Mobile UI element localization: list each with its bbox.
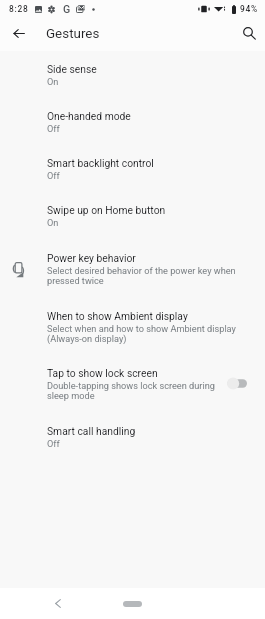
button[interactable]: Power key behavior bbox=[0, 240, 265, 298]
staticText: Power key behavior bbox=[47, 252, 136, 264]
staticText: Side sense bbox=[47, 63, 97, 75]
staticText: Off bbox=[47, 170, 60, 181]
staticText: Off bbox=[47, 438, 60, 449]
staticText: When to show Ambient display bbox=[47, 310, 188, 322]
staticText: On bbox=[47, 217, 59, 228]
staticText: 94% bbox=[240, 4, 258, 14]
button[interactable]: Smart backlight control bbox=[0, 145, 265, 192]
staticText: Off bbox=[47, 123, 60, 134]
button[interactable]: Smart call handling bbox=[0, 413, 265, 460]
staticText: Smart backlight control bbox=[47, 157, 154, 169]
button[interactable]: Home bbox=[123, 601, 142, 607]
staticText: 8:28 bbox=[9, 4, 29, 14]
button[interactable]: Search bbox=[237, 21, 262, 46]
button[interactable]: One-handed mode bbox=[0, 98, 265, 145]
staticText: Select desired behavior of the power key… bbox=[47, 265, 252, 287]
staticText: Smart call handling bbox=[47, 425, 136, 437]
button[interactable]: Tap to show lock screen bbox=[0, 355, 265, 413]
staticText: G bbox=[63, 3, 71, 15]
button[interactable]: Back bbox=[46, 592, 69, 615]
button[interactable]: Swipe up on Home button bbox=[0, 192, 265, 240]
staticText: One-handed mode bbox=[47, 110, 131, 122]
staticText: Gestures bbox=[46, 26, 100, 42]
staticText: Swipe up on Home button bbox=[47, 204, 166, 216]
button[interactable]: Side sense bbox=[0, 51, 265, 98]
button[interactable]: Back bbox=[6, 21, 31, 46]
staticText: Double-tapping shows lock screen during … bbox=[47, 380, 227, 402]
staticText: Select when and how to show Ambient disp… bbox=[47, 323, 252, 345]
staticText: Tap to show lock screen bbox=[47, 367, 158, 379]
staticText: On bbox=[47, 76, 59, 87]
button[interactable]: When to show Ambient display bbox=[0, 298, 265, 355]
